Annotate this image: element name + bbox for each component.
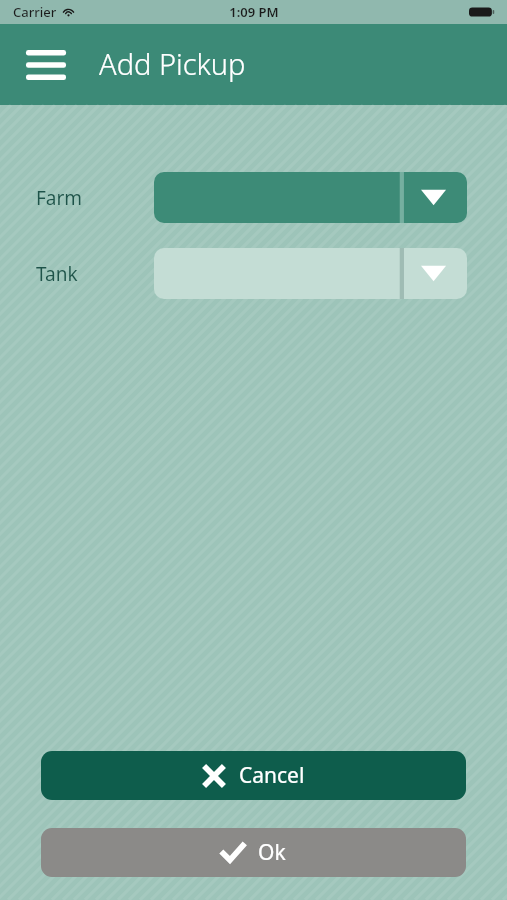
staticText: 1:09 PM [229,3,279,21]
staticText: Add Pickup [99,44,246,83]
button[interactable]: Cancel [41,751,466,800]
button[interactable]: Farm selector [154,172,467,223]
staticText: Cancel [239,761,305,790]
staticText: Farm [36,185,83,211]
button[interactable]: Ok [41,828,466,877]
staticText: Carrier [13,3,57,21]
staticText: Ok [258,838,286,867]
button[interactable]: Open navigation menu [18,37,74,93]
staticText: Tank [36,261,78,287]
button[interactable]: Tank selector [154,248,467,299]
